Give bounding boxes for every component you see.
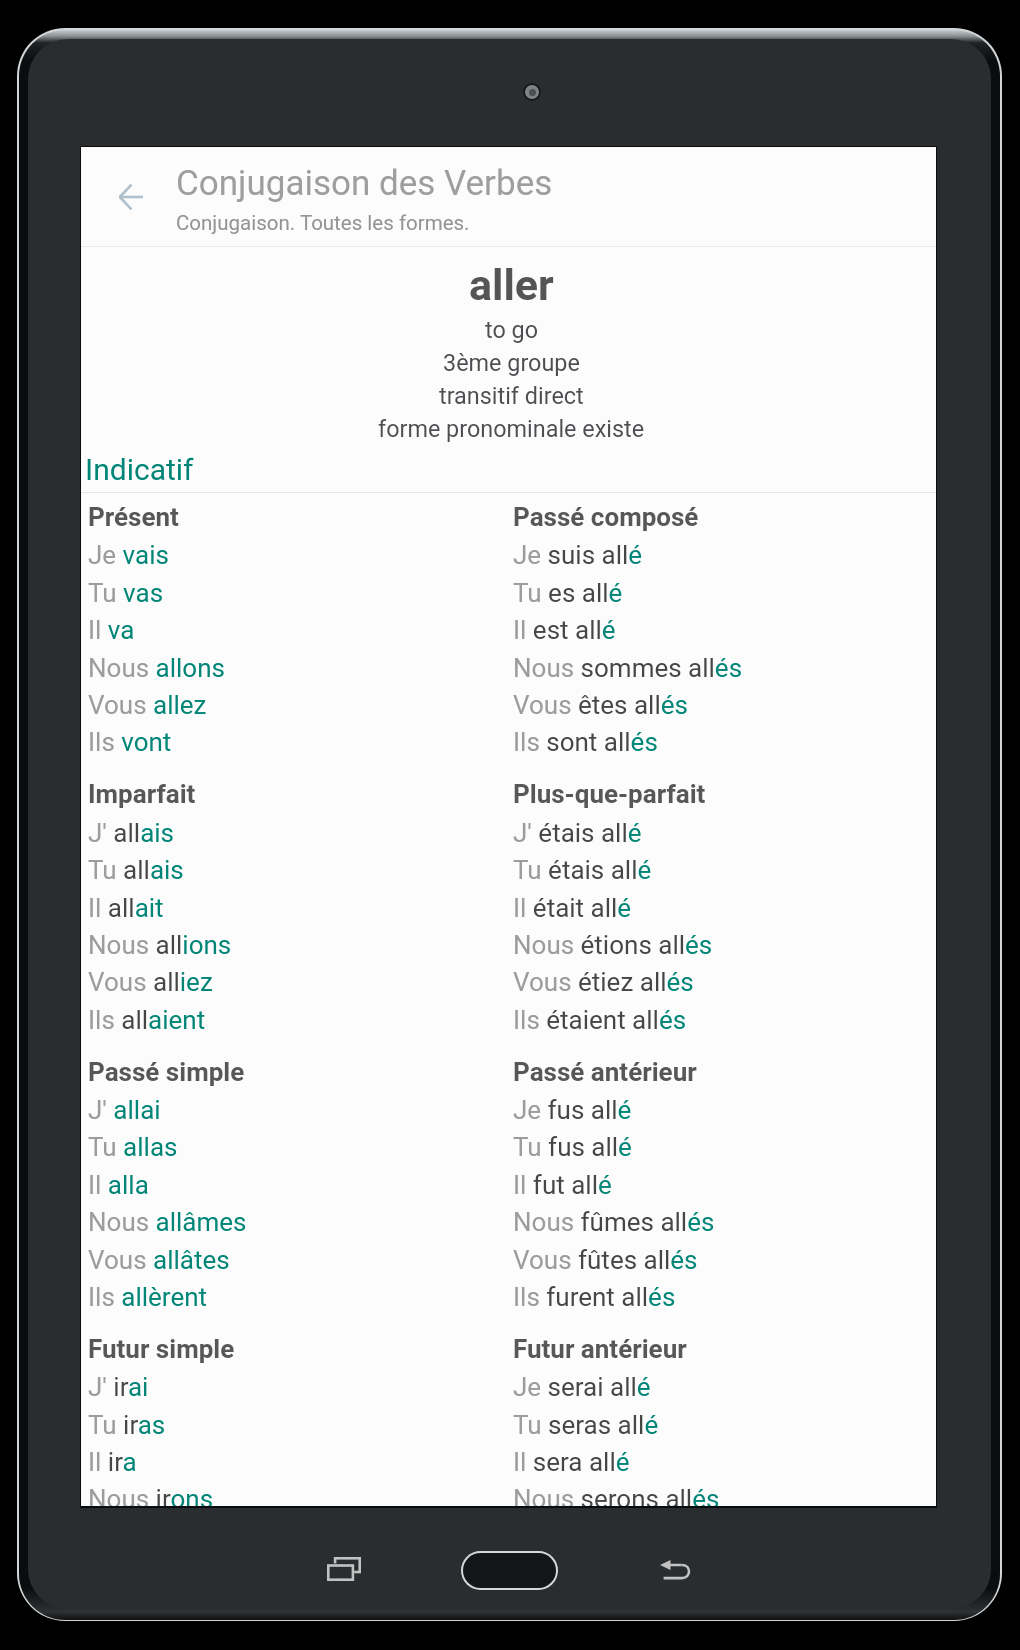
staticText: Nous sommes allés: [513, 653, 743, 683]
staticText: Nous étions allés: [513, 930, 713, 960]
button[interactable]: Vous êtes allés: [513, 690, 688, 720]
staticText: Tu fus allé: [513, 1132, 632, 1162]
staticText: Ils allaient: [88, 1005, 206, 1035]
button[interactable]: Ils furent allés: [513, 1282, 676, 1312]
button[interactable]: Il fut allé: [513, 1170, 612, 1200]
staticText: Passé composé: [513, 502, 699, 532]
button[interactable]: Je suis allé: [513, 540, 643, 570]
staticText: Tu vas: [88, 578, 164, 608]
button[interactable]: Nous étions allés: [513, 930, 713, 960]
staticText: to go: [485, 316, 539, 343]
button[interactable]: Tu vas: [88, 578, 164, 608]
button[interactable]: Vous étiez allés: [513, 967, 694, 997]
button[interactable]: J' allai: [88, 1095, 161, 1125]
button[interactable]: Il allait: [88, 893, 164, 923]
button[interactable]: Je fus allé: [513, 1095, 632, 1125]
button[interactable]: Recent apps: [315, 1540, 373, 1598]
button[interactable]: Nous irons: [88, 1484, 214, 1506]
staticText: Nous allâmes: [88, 1207, 247, 1237]
button[interactable]: J' irai: [88, 1372, 149, 1402]
staticText: Je suis allé: [513, 540, 643, 570]
button[interactable]: Passé composé: [513, 502, 699, 532]
button[interactable]: Il alla: [88, 1170, 149, 1200]
staticText: J' allai: [88, 1095, 161, 1125]
button[interactable]: Il était allé: [513, 893, 632, 923]
button[interactable]: Tu fus allé: [513, 1132, 632, 1162]
button[interactable]: Il va: [88, 615, 135, 645]
button[interactable]: Nous allons: [88, 653, 225, 683]
staticText: Nous irons: [88, 1484, 214, 1506]
staticText: Vous allâtes: [88, 1245, 230, 1275]
staticText: Il sera allé: [513, 1447, 630, 1477]
button[interactable]: Futur antérieur: [513, 1334, 687, 1364]
staticText: Futur simple: [88, 1334, 235, 1364]
button[interactable]: Imparfait: [88, 779, 196, 809]
staticText: Conjugaison. Toutes les formes.: [176, 211, 470, 235]
staticText: Nous allions: [88, 930, 232, 960]
button[interactable]: Ils vont: [88, 727, 172, 757]
staticText: Vous allez: [88, 690, 207, 720]
staticText: Je vais: [88, 540, 169, 570]
button[interactable]: Tu allais: [88, 855, 184, 885]
button[interactable]: Il ira: [88, 1447, 137, 1477]
staticText: 3ème groupe: [443, 349, 580, 376]
staticText: Plus-que-parfait: [513, 779, 706, 809]
staticText: Je serai allé: [513, 1372, 651, 1402]
staticText: Il fut allé: [513, 1170, 612, 1200]
staticText: Il alla: [88, 1170, 149, 1200]
button[interactable]: Tu seras allé: [513, 1410, 659, 1440]
staticText: Imparfait: [88, 779, 196, 809]
button[interactable]: Home: [463, 1553, 556, 1588]
staticText: J' étais allé: [513, 818, 642, 848]
button[interactable]: Il sera allé: [513, 1447, 630, 1477]
staticText: Tu es allé: [513, 578, 623, 608]
button[interactable]: Back: [646, 1541, 704, 1599]
button[interactable]: Tu étais allé: [513, 855, 652, 885]
button[interactable]: Ils sont allés: [513, 727, 658, 757]
button[interactable]: Passé simple: [88, 1057, 245, 1087]
button[interactable]: Ils allèrent: [88, 1282, 208, 1312]
staticText: Nous allons: [88, 653, 225, 683]
staticText: Ils sont allés: [513, 727, 658, 757]
staticText: Il est allé: [513, 615, 616, 645]
button[interactable]: Vous alliez: [88, 967, 213, 997]
staticText: Ils allèrent: [88, 1282, 208, 1312]
staticText: Futur antérieur: [513, 1334, 687, 1364]
button[interactable]: Je vais: [88, 540, 169, 570]
staticText: forme pronominale existe: [378, 415, 645, 442]
button[interactable]: Ils étaient allés: [513, 1005, 687, 1035]
button[interactable]: Passé antérieur: [513, 1057, 697, 1087]
button[interactable]: J' étais allé: [513, 818, 642, 848]
staticText: Passé simple: [88, 1057, 245, 1087]
button[interactable]: Nous allions: [88, 930, 232, 960]
button[interactable]: Tu iras: [88, 1410, 166, 1440]
button[interactable]: Futur simple: [88, 1334, 235, 1364]
button[interactable]: Présent: [88, 502, 179, 532]
button[interactable]: Nous fûmes allés: [513, 1207, 715, 1237]
staticText: Tu iras: [88, 1410, 166, 1440]
button[interactable]: Tu es allé: [513, 578, 623, 608]
button[interactable]: Vous fûtes allés: [513, 1245, 698, 1275]
staticText: Conjugaison des Verbes: [176, 163, 553, 204]
staticText: Vous êtes allés: [513, 690, 688, 720]
button[interactable]: Plus-que-parfait: [513, 779, 706, 809]
button[interactable]: Je serai allé: [513, 1372, 651, 1402]
button[interactable]: Vous allâtes: [88, 1245, 230, 1275]
staticText: Ils étaient allés: [513, 1005, 687, 1035]
button[interactable]: Nous serons allés: [513, 1484, 720, 1506]
button[interactable]: Nous sommes allés: [513, 653, 743, 683]
button[interactable]: Navigate up: [101, 167, 161, 227]
button[interactable]: Il est allé: [513, 615, 616, 645]
staticText: Il était allé: [513, 893, 632, 923]
staticText: Nous fûmes allés: [513, 1207, 715, 1237]
button[interactable]: Vous allez: [88, 690, 207, 720]
button[interactable]: Ils allaient: [88, 1005, 206, 1035]
button[interactable]: Tu allas: [88, 1132, 178, 1162]
button[interactable]: Nous allâmes: [88, 1207, 247, 1237]
staticText: Vous fûtes allés: [513, 1245, 698, 1275]
button[interactable]: J' allais: [88, 818, 175, 848]
staticText: Indicatif: [85, 452, 194, 487]
staticText: Il ira: [88, 1447, 137, 1477]
staticText: Vous étiez allés: [513, 967, 694, 997]
staticText: Présent: [88, 502, 179, 532]
